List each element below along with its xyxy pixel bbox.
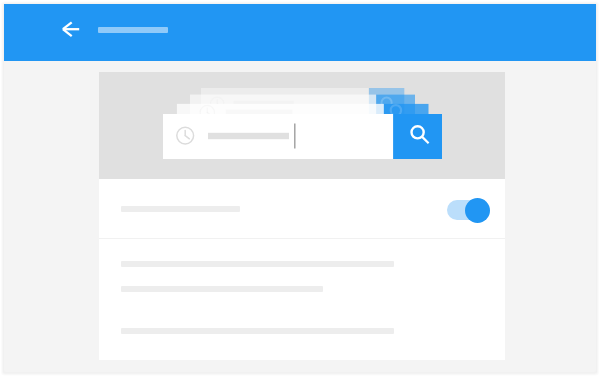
button[interactable] xyxy=(99,305,505,360)
button[interactable] xyxy=(99,239,505,299)
button[interactable]: Back xyxy=(52,8,92,50)
button[interactable]: Search xyxy=(163,114,442,159)
button[interactable] xyxy=(99,179,505,238)
